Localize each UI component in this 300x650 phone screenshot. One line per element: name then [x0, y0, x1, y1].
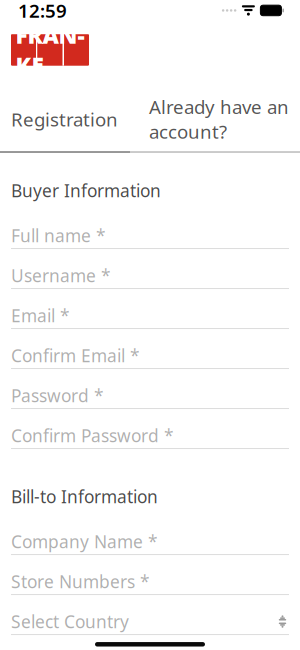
staticText: Select Country — [11, 610, 129, 633]
button[interactable]: Confirm Email * — [11, 336, 289, 376]
staticText: Registration — [11, 107, 118, 132]
staticText: 12:59 — [18, 0, 67, 23]
staticText: Email * — [11, 304, 70, 327]
button[interactable]: Username * — [11, 256, 289, 296]
staticText: Already have an account? — [149, 94, 289, 144]
button[interactable]: Email * — [11, 296, 289, 336]
button[interactable]: Store Numbers * — [11, 562, 289, 602]
staticText: Password * — [11, 384, 104, 407]
button[interactable]: Full name * — [11, 216, 289, 256]
button[interactable]: Select Country — [11, 602, 289, 642]
staticText: Bill-to Information — [11, 485, 158, 508]
button[interactable]: Confirm Password * — [11, 416, 289, 456]
button[interactable]: Already have an account? — [149, 92, 289, 146]
staticText: Store Numbers * — [11, 570, 150, 593]
staticText: Company Name * — [11, 530, 158, 553]
staticText: FRANKE — [15, 20, 84, 80]
staticText: Confirm Email * — [11, 344, 140, 367]
staticText: Full name * — [11, 224, 106, 247]
staticText: Confirm Password * — [11, 424, 174, 447]
staticText: Username * — [11, 264, 111, 287]
button[interactable]: Password * — [11, 376, 289, 416]
staticText: Buyer Information — [11, 179, 161, 202]
button[interactable]: Registration — [11, 105, 118, 134]
button[interactable]: Company Name * — [11, 522, 289, 562]
